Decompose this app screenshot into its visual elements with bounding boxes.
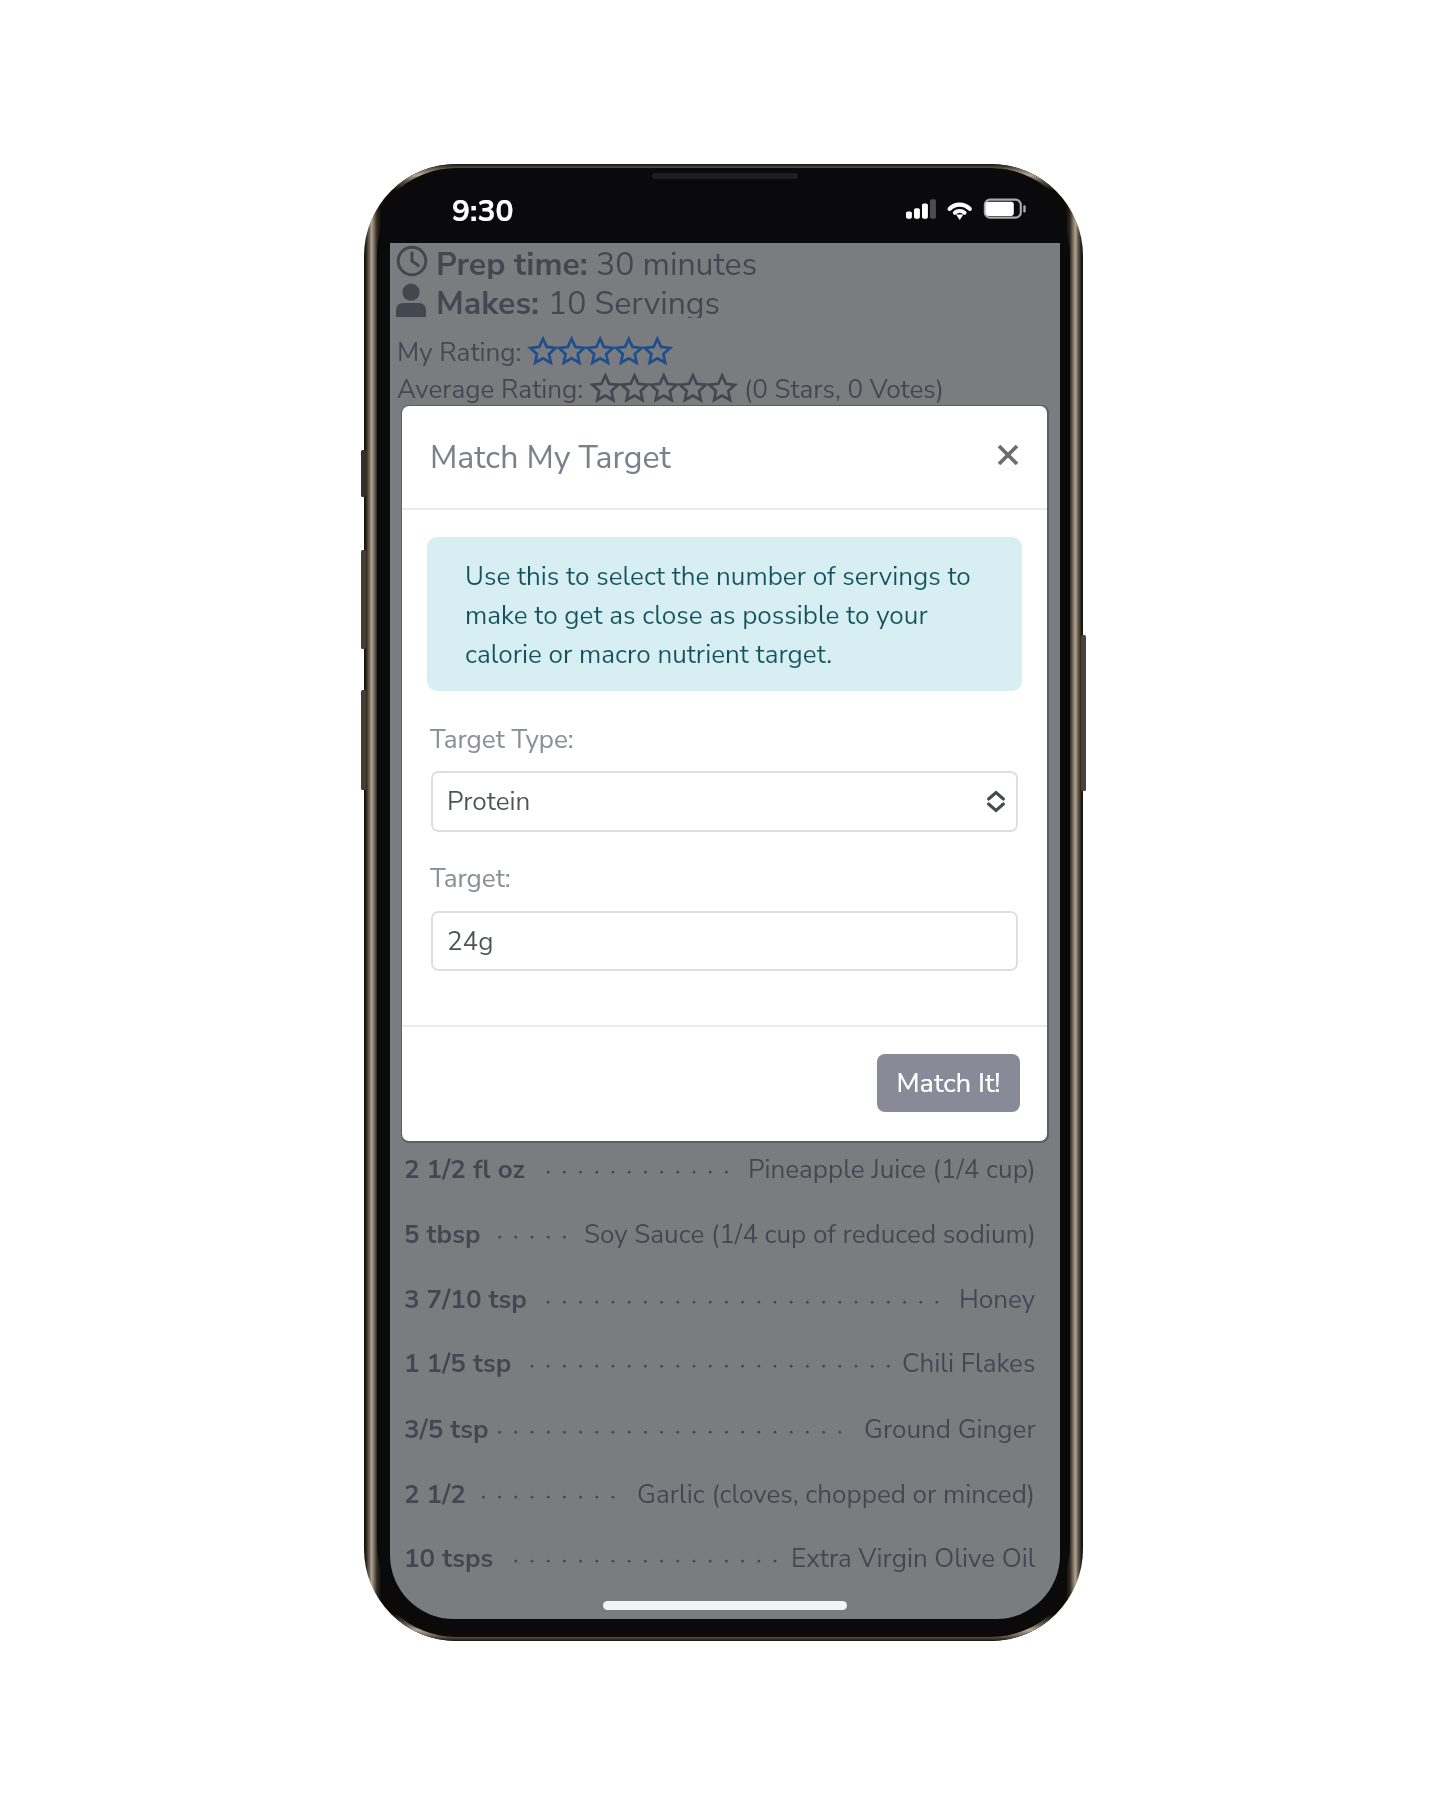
button[interactable]: 10 tsps [390,1534,1060,1582]
staticText: Target Type: [430,722,574,757]
staticText: Garlic (cloves, chopped or minced) [637,1477,1036,1512]
staticText: Pineapple Juice (1/4 cup) [748,1152,1036,1187]
button[interactable]: Rate this recipe [529,337,672,367]
staticText: Extra Virgin Olive Oil [791,1541,1036,1576]
staticText: My Rating: [397,335,522,370]
button[interactable]: Close dialog [980,427,1036,483]
staticText: Average Rating: [397,372,584,407]
staticText: Makes: [436,282,540,318]
staticText: 2 1/2 fl oz [404,1152,525,1187]
button[interactable]: 3/5 tsp [390,1405,1060,1453]
staticText: Protein [447,784,531,819]
staticText: Chili Flakes [902,1346,1036,1381]
staticText: 3 7/10 tsp [404,1282,527,1317]
staticText: Soy Sauce (1/4 cup of reduced sodium) [584,1217,1036,1252]
staticText: 3/5 tsp [404,1412,489,1447]
staticText: Target: [430,861,511,896]
button[interactable]: Protein [431,771,1018,832]
button[interactable]: 2 1/2 fl oz [390,1145,1060,1193]
button[interactable]: 2 1/2 [390,1470,1060,1518]
staticText: Honey [959,1282,1036,1317]
staticText: 24g [447,924,494,959]
button[interactable]: 5 tbsp [390,1210,1060,1258]
button[interactable]: 3 7/10 tsp [390,1275,1060,1323]
staticText: (0 Stars, 0 Votes) [744,372,945,407]
staticText: 1 1/5 tsp [404,1346,512,1381]
staticText: 2 1/2 [404,1477,466,1512]
staticText: 9:30 [452,191,514,232]
button[interactable]: Match It! [877,1054,1020,1112]
staticText: 10 tsps [404,1541,494,1576]
staticText: 10 Servings [548,282,720,318]
staticText: 30 minutes [596,243,758,279]
staticText: 5 tbsp [404,1217,481,1252]
staticText: Ground Ginger [864,1412,1036,1447]
staticText: Use this to select the number of serving… [465,559,985,672]
staticText: Match My Target [430,436,671,480]
button[interactable]: 1 1/5 tsp [390,1339,1060,1387]
staticText: Prep time: [436,243,588,279]
staticText: Match It! [896,1065,1001,1102]
button[interactable]: 24g [431,911,1018,971]
